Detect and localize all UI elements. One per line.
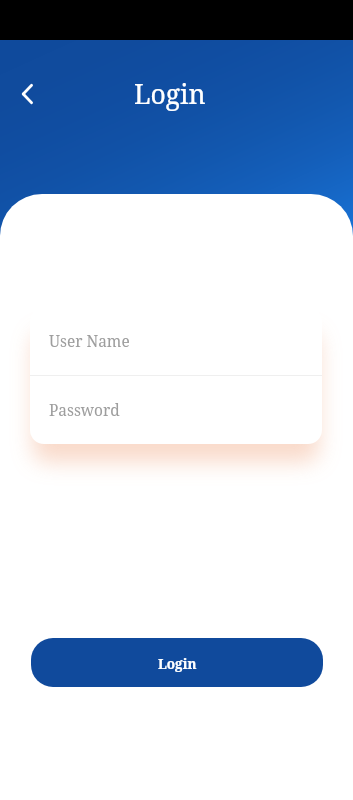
staticText: Login [134, 76, 206, 112]
staticText: User Name [49, 331, 130, 352]
button[interactable]: Login [31, 638, 323, 687]
button[interactable]: Back [8, 74, 48, 114]
staticText: Login [158, 655, 197, 673]
staticText: Password [49, 400, 120, 421]
button[interactable]: User Name [30, 308, 322, 375]
button[interactable]: Password [30, 376, 322, 444]
